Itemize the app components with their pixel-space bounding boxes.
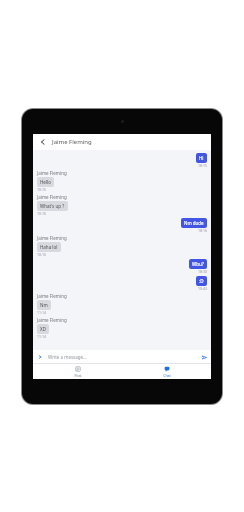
button[interactable]: Hi <box>196 153 207 163</box>
staticText: Hello <box>40 179 51 185</box>
button[interactable]: Post <box>33 364 122 379</box>
staticText: Nm dude <box>184 220 204 226</box>
staticText: :D <box>199 278 204 284</box>
staticText: 18:15 <box>198 163 207 168</box>
staticText: XD <box>40 326 46 332</box>
button[interactable]: Wbu? <box>189 259 207 269</box>
button[interactable]: Nm dude <box>181 218 207 228</box>
staticText: 10:15 <box>37 187 46 192</box>
button[interactable]: Hello <box>37 177 54 187</box>
staticText: 10:16 <box>37 252 46 257</box>
staticText: 10:16 <box>37 211 46 216</box>
staticText: 18:16 <box>198 228 207 233</box>
button[interactable]: XD <box>37 324 49 334</box>
staticText: What's up ? <box>40 203 65 209</box>
staticText: Write a message... <box>48 354 87 360</box>
button[interactable]: Back <box>37 136 49 148</box>
button[interactable]: Chat <box>122 364 211 379</box>
staticText: Jaime Fleming <box>37 293 67 299</box>
staticText: Jaime Fleming <box>52 138 92 146</box>
button[interactable]: What's up ? <box>37 201 68 211</box>
button[interactable]: Haha lol <box>37 242 61 252</box>
button[interactable]: Send <box>200 353 208 361</box>
button[interactable]: Attach <box>36 353 44 361</box>
staticText: Nm <box>40 302 48 308</box>
staticText: Post <box>74 373 82 378</box>
staticText: Jaime Fleming <box>37 194 67 200</box>
staticText: 11:14 <box>37 334 46 339</box>
staticText: 18:30 <box>198 269 207 274</box>
staticText: Wbu? <box>192 261 204 267</box>
staticText: Jaime Fleming <box>37 170 67 176</box>
button[interactable]: Write a message... <box>45 353 199 361</box>
button[interactable]: :D <box>196 276 207 286</box>
staticText: Haha lol <box>40 244 58 250</box>
staticText: 10:43 <box>198 286 207 291</box>
staticText: Jaime Fleming <box>37 317 67 323</box>
staticText: Chat <box>163 373 171 378</box>
staticText: 11:14 <box>37 310 46 315</box>
staticText: Hi <box>199 155 204 161</box>
staticText: Jaime Fleming <box>37 235 67 241</box>
button[interactable]: Nm <box>37 300 51 310</box>
